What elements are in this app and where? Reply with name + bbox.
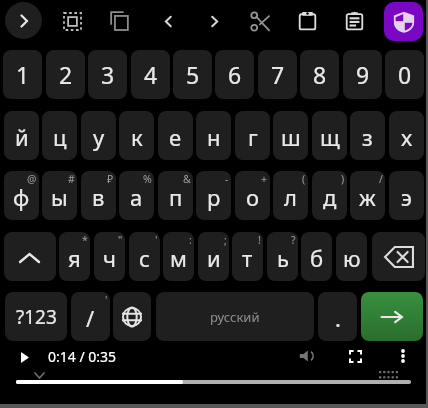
staticText: т — [242, 243, 253, 273]
staticText: 7 — [271, 59, 285, 90]
staticText: н — [207, 122, 221, 152]
button[interactable]: н — [196, 111, 231, 160]
button[interactable]: к — [119, 111, 154, 160]
button[interactable]: у — [81, 111, 116, 160]
button[interactable]: т — [232, 232, 263, 281]
staticText: 6 — [228, 59, 242, 90]
button[interactable]: л — [273, 171, 308, 220]
button[interactable]: Select all — [55, 5, 89, 37]
button[interactable]: й — [4, 111, 39, 160]
button[interactable]: 3 — [88, 50, 127, 99]
staticText: щ — [320, 122, 340, 152]
button[interactable]: Mute — [291, 343, 323, 369]
button[interactable]: м — [163, 232, 194, 281]
button[interactable]: ш — [273, 111, 308, 160]
button[interactable]: 9 — [343, 50, 382, 99]
button[interactable]: Copy — [102, 4, 136, 36]
staticText: ч — [103, 243, 116, 273]
staticText: ; — [224, 233, 227, 247]
staticText: % — [143, 172, 152, 186]
button[interactable]: 5 — [173, 50, 212, 99]
button[interactable]: х — [389, 111, 424, 160]
staticText: ! — [258, 233, 261, 247]
staticText: @ — [27, 172, 37, 186]
staticText: и — [207, 243, 221, 273]
button[interactable]: ?123 — [5, 292, 67, 341]
staticText: г — [248, 122, 258, 152]
button[interactable]: 4 — [131, 50, 170, 99]
button[interactable]: Shift — [4, 232, 56, 281]
staticText: " — [118, 233, 123, 247]
staticText: & — [183, 172, 191, 186]
staticText: ' — [155, 233, 158, 247]
staticText: ь — [277, 243, 289, 273]
button[interactable]: Clipboard — [337, 4, 371, 36]
staticText: с — [139, 243, 150, 273]
staticText: 4 — [144, 59, 158, 90]
button[interactable]: 6 — [215, 50, 254, 99]
button[interactable]: Next — [197, 5, 231, 37]
button[interactable]: о — [235, 171, 270, 220]
staticText: 0 — [398, 59, 412, 90]
button[interactable]: и — [198, 232, 229, 281]
button[interactable]: 0 — [385, 50, 424, 99]
button[interactable]: е — [158, 111, 193, 160]
staticText: ж — [359, 182, 376, 212]
staticText: е — [169, 122, 182, 152]
button[interactable]: я — [59, 232, 90, 281]
button[interactable]: 1 — [3, 50, 42, 99]
button[interactable]: Backspace — [372, 232, 425, 281]
staticText: * — [82, 233, 88, 247]
button[interactable]: ч — [94, 232, 125, 281]
staticText: б — [310, 243, 324, 273]
staticText: / — [379, 172, 383, 186]
staticText: + — [261, 172, 268, 186]
staticText: 3 — [101, 59, 115, 90]
button[interactable]: 8 — [300, 50, 339, 99]
button[interactable]: Cut — [243, 5, 277, 37]
button[interactable]: ь — [267, 232, 298, 281]
button[interactable]: Fullscreen — [340, 343, 370, 369]
staticText: 9 — [356, 59, 370, 90]
button[interactable]: 2 — [46, 50, 85, 99]
button[interactable]: ц — [42, 111, 77, 160]
staticText: - — [225, 172, 229, 186]
button[interactable]: Previous — [151, 5, 185, 37]
button[interactable]: а — [119, 171, 154, 220]
staticText: 1 — [16, 59, 30, 90]
button[interactable]: щ — [312, 111, 347, 160]
button[interactable]: ж — [350, 171, 385, 220]
button[interactable]: р — [196, 171, 231, 220]
button[interactable]: ю — [336, 232, 367, 281]
button[interactable]: с — [129, 232, 160, 281]
button[interactable]: Enter — [361, 292, 423, 341]
staticText: в — [92, 182, 105, 212]
staticText: п — [169, 182, 183, 212]
button[interactable]: э — [389, 171, 424, 220]
button[interactable]: / — [71, 292, 110, 341]
button[interactable]: 7 — [258, 50, 297, 99]
button[interactable]: русский — [156, 292, 314, 341]
button[interactable]: Play — [11, 344, 39, 370]
button[interactable]: з — [350, 111, 385, 160]
staticText: ц — [53, 122, 67, 152]
button[interactable]: Password manager — [384, 2, 423, 41]
button[interactable]: ф — [4, 171, 39, 220]
button[interactable]: в — [81, 171, 116, 220]
button[interactable]: More options — [391, 343, 415, 369]
staticText: а — [130, 182, 143, 212]
staticText: д — [323, 182, 337, 212]
button[interactable]: п — [158, 171, 193, 220]
staticText: х — [401, 122, 413, 152]
staticText: # — [68, 172, 75, 186]
button[interactable]: . — [318, 292, 357, 341]
button[interactable]: Change language — [113, 292, 151, 341]
button[interactable]: б — [301, 232, 332, 281]
button[interactable]: г — [235, 111, 270, 160]
button[interactable]: Expand toolbar — [5, 2, 42, 39]
button[interactable]: д — [312, 171, 347, 220]
button[interactable]: Paste — [290, 4, 324, 36]
button[interactable]: ы — [42, 171, 77, 220]
staticText: ) — [341, 172, 345, 186]
staticText: ₽ — [107, 172, 114, 186]
